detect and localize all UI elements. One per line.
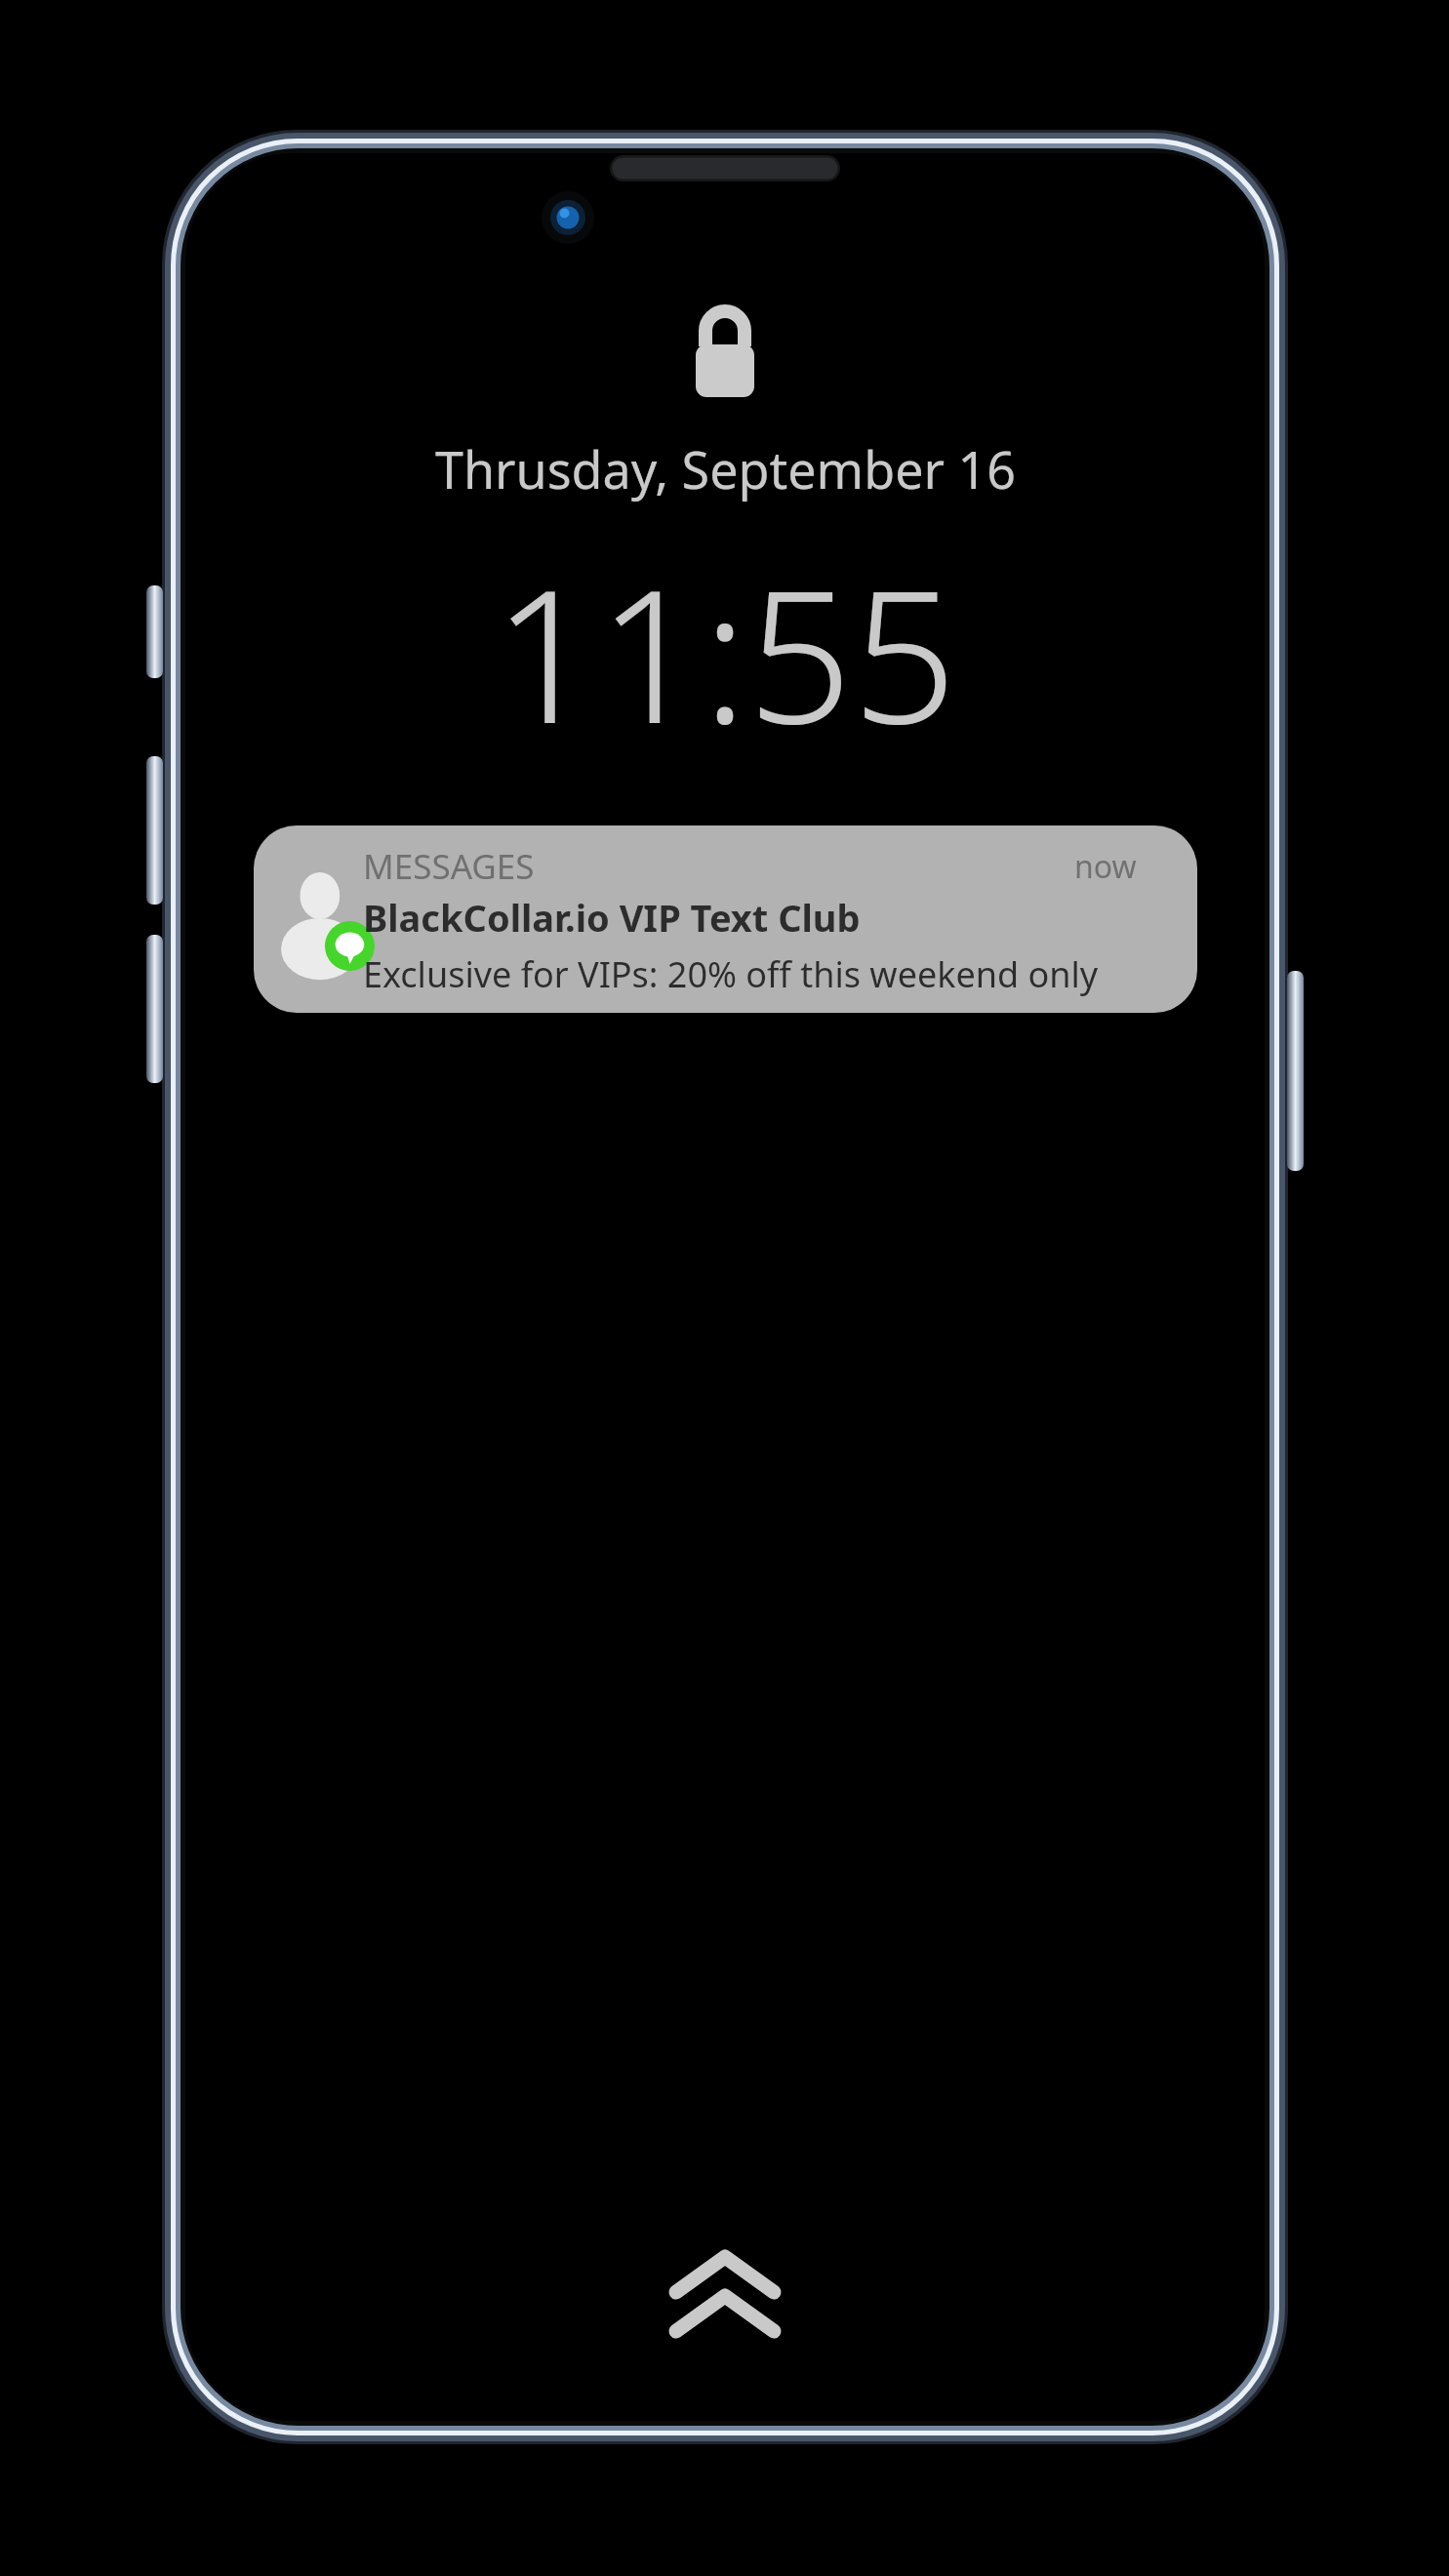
staticText: now bbox=[1074, 845, 1137, 888]
staticText: MESSAGES bbox=[363, 843, 535, 890]
staticText: 11:55 bbox=[493, 527, 957, 777]
staticText: Exclusive for VIPs: 20% off this weekend… bbox=[363, 950, 1099, 998]
button[interactable]: MESSAGES bbox=[254, 825, 1197, 1013]
staticText: Thrusday, September 16 bbox=[435, 434, 1016, 503]
button[interactable]: Swipe up to unlock bbox=[647, 2235, 803, 2353]
staticText: BlackCollar.io VIP Text Club bbox=[363, 892, 861, 943]
